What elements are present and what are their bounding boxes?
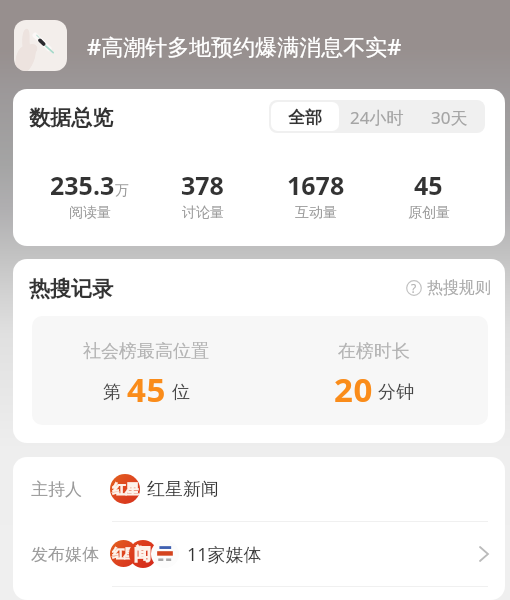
staticText: 阅读量 xyxy=(69,204,111,222)
staticText: 20 xyxy=(334,367,373,412)
staticText: 24小时 xyxy=(350,106,404,129)
staticText: 红星新闻 xyxy=(147,478,219,501)
staticText: 235.3 xyxy=(50,168,115,202)
staticText: 45 xyxy=(414,168,443,202)
staticText: 位 xyxy=(172,381,190,404)
staticText: 11家媒体 xyxy=(187,542,262,567)
staticText: 发布媒体 xyxy=(31,544,99,565)
staticText: 1678 xyxy=(287,168,345,202)
button[interactable]: 全部 xyxy=(271,102,339,131)
staticText: 第 xyxy=(103,381,121,404)
button[interactable]: ? xyxy=(398,272,505,304)
button[interactable]: 30天 xyxy=(413,100,485,133)
staticText: 原创量 xyxy=(408,204,450,222)
button[interactable]: 主持人 xyxy=(13,457,505,521)
button[interactable]: 24小时 xyxy=(341,100,413,133)
staticText: 红星 xyxy=(112,546,136,562)
staticText: 分钟 xyxy=(378,381,414,404)
staticText: #高潮针多地预约爆满消息不实# xyxy=(87,31,402,61)
staticText: 红星 xyxy=(112,480,139,498)
staticText: 主持人 xyxy=(31,479,82,500)
staticText: 互动量 xyxy=(295,204,337,222)
staticText: 全部 xyxy=(288,107,322,128)
staticText: 热搜规则 xyxy=(427,278,491,298)
button[interactable]: 发布媒体 xyxy=(13,522,505,586)
staticText: 闻 xyxy=(134,543,152,565)
staticText: 热搜记录 xyxy=(29,276,113,302)
staticText: 数据总览 xyxy=(29,105,113,131)
staticText: 45 xyxy=(127,367,166,412)
staticText: 讨论量 xyxy=(182,204,224,222)
staticText: 社会榜最高位置 xyxy=(83,340,209,363)
staticText: ? xyxy=(411,280,417,296)
staticText: 在榜时长 xyxy=(338,340,410,363)
staticText: 378 xyxy=(181,168,224,202)
staticText: 30天 xyxy=(431,106,468,129)
staticText: 万 xyxy=(115,182,129,200)
